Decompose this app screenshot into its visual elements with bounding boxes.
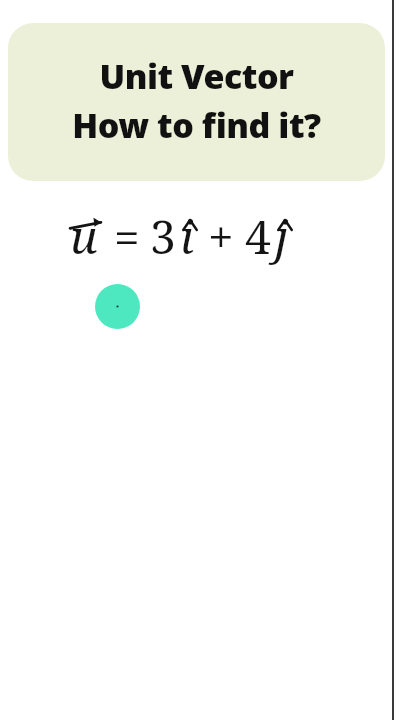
staticText: Unit Vector: [8, 53, 385, 99]
staticText: 4: [245, 205, 271, 268]
staticText: =: [114, 205, 140, 268]
staticText: How to find it?: [8, 102, 385, 148]
staticText: 3: [150, 205, 176, 268]
button[interactable]: Marker dot: [95, 284, 140, 329]
button[interactable]: Unit Vector: [8, 23, 385, 181]
staticText: +: [208, 205, 234, 268]
staticText: u: [70, 205, 98, 268]
staticText: i: [180, 205, 194, 268]
staticText: j: [275, 205, 289, 268]
